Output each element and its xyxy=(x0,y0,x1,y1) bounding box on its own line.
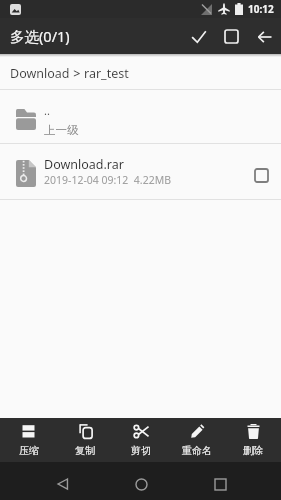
button[interactable]: Download.rar xyxy=(0,144,281,199)
button[interactable]: 重命名 xyxy=(169,418,225,462)
button[interactable] xyxy=(182,20,215,53)
staticText: Download xyxy=(10,65,70,82)
staticText: > xyxy=(70,65,84,82)
staticText: 删除 xyxy=(243,444,263,457)
staticText: 压缩 xyxy=(19,444,39,457)
staticText: 10:12 xyxy=(248,2,274,16)
button[interactable]: 复制 xyxy=(57,418,113,462)
button[interactable]: .. xyxy=(0,90,281,143)
button[interactable]: rar_test xyxy=(84,65,129,82)
button[interactable] xyxy=(215,20,248,53)
button[interactable] xyxy=(248,20,281,53)
staticText: rar_test xyxy=(84,65,129,82)
button[interactable] xyxy=(121,466,161,500)
button[interactable]: 删除 xyxy=(225,418,281,462)
staticText: 复制 xyxy=(75,444,95,457)
button[interactable]: Download xyxy=(10,65,70,82)
staticText: 重命名 xyxy=(182,444,212,457)
button[interactable] xyxy=(200,466,240,500)
staticText: .. xyxy=(44,103,50,118)
button[interactable] xyxy=(42,466,82,500)
staticText: Download.rar xyxy=(44,156,124,173)
button[interactable]: 压缩 xyxy=(0,418,57,462)
staticText: 剪切 xyxy=(131,444,151,457)
staticText: 上一级 xyxy=(44,123,79,137)
staticText: 2019-12-04 09:12 4.22MB xyxy=(44,173,172,187)
staticText: 多选(0/1) xyxy=(10,26,70,46)
button[interactable]: 剪切 xyxy=(113,418,169,462)
button[interactable] xyxy=(241,155,281,195)
